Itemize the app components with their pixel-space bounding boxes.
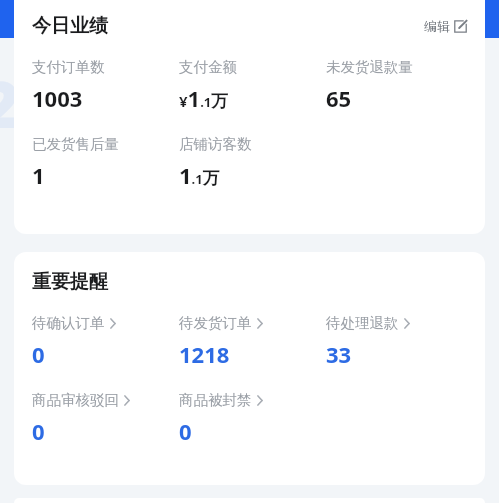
button[interactable]: 待确认订单: [32, 314, 179, 369]
button[interactable]: 待处理退款: [326, 314, 473, 369]
button[interactable]: 商品被封禁: [179, 391, 326, 446]
staticText: 支付订单数: [32, 58, 105, 76]
staticText: 已发货售后量: [32, 135, 119, 153]
other: 编辑: [454, 20, 467, 33]
staticText: 0: [32, 416, 45, 446]
button[interactable]: 商品审核驳回: [32, 391, 179, 446]
staticText: 0: [179, 416, 192, 446]
staticText: 今日业绩: [32, 14, 108, 38]
staticText: 支付金额: [179, 58, 237, 76]
staticText: 商品审核驳回: [32, 391, 119, 409]
staticText: 待发货订单: [179, 314, 252, 332]
button[interactable]: 支付金额: [179, 58, 326, 113]
staticText: 21043: [0, 60, 170, 147]
staticText: 待处理退款: [326, 314, 399, 332]
staticText: 1218: [179, 339, 230, 369]
staticText: 1.1万: [179, 160, 220, 190]
button[interactable]: 编辑: [422, 16, 469, 36]
staticText: 0: [32, 339, 45, 369]
staticText: ¥1.1万: [179, 83, 229, 113]
button[interactable]: 未发货退款量: [326, 58, 473, 113]
staticText: 商品被封禁: [179, 391, 252, 409]
staticText: 未发货退款量: [326, 58, 413, 76]
staticText: 待确认订单: [32, 314, 105, 332]
button[interactable]: 已发货售后量: [32, 135, 179, 190]
staticText: 1003: [32, 83, 83, 113]
staticText: 编辑: [424, 18, 450, 34]
staticText: 33: [326, 339, 352, 369]
button[interactable]: 待发货订单: [179, 314, 326, 369]
staticText: 65: [326, 83, 352, 113]
staticText: 重要提醒: [32, 270, 108, 294]
staticText: 1: [32, 160, 45, 190]
button[interactable]: 支付订单数: [32, 58, 179, 113]
button[interactable]: 店铺访客数: [179, 135, 326, 190]
staticText: 店铺访客数: [179, 135, 252, 153]
